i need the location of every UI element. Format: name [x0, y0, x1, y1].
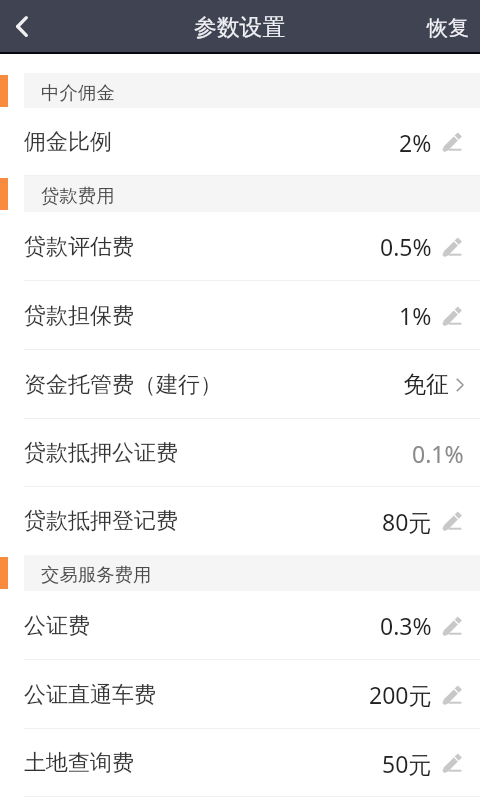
staticText: 0.3% [380, 610, 432, 641]
staticText: 200元 [369, 679, 432, 710]
staticText: 免征 [403, 370, 449, 399]
staticText: 中介佣金 [41, 81, 115, 104]
staticText: 资金托管费（建行） [24, 371, 222, 399]
button[interactable]: 贷款抵押登记费 [0, 487, 480, 555]
staticText: 恢复 [427, 15, 469, 41]
button[interactable]: 贷款评估费 [0, 212, 480, 281]
staticText: 交易服务费用 [41, 563, 152, 586]
button[interactable]: 贷款担保费 [0, 281, 480, 350]
button[interactable]: Back [0, 0, 44, 52]
button[interactable]: 佣金比例 [0, 108, 480, 176]
staticText: 1% [399, 300, 432, 331]
button[interactable]: 贷款抵押公证费 [0, 419, 480, 487]
staticText: 0.1% [412, 438, 464, 469]
button[interactable]: 恢复 [416, 0, 480, 52]
staticText: 0.5% [380, 231, 432, 262]
staticText: 2% [399, 127, 432, 158]
button[interactable]: 土地查询费 [0, 729, 480, 797]
staticText: 80元 [382, 506, 432, 537]
staticText: 公证费 [24, 612, 90, 640]
staticText: 贷款担保费 [24, 302, 134, 330]
staticText: 贷款费用 [41, 184, 115, 207]
button[interactable]: 资金托管费（建行） [0, 350, 480, 419]
staticText: 50元 [382, 748, 432, 779]
staticText: 贷款评估费 [24, 233, 134, 261]
staticText: 贷款抵押登记费 [24, 507, 178, 535]
button[interactable]: 公证直通车费 [0, 660, 480, 729]
staticText: 佣金比例 [24, 128, 112, 156]
staticText: 公证直通车费 [24, 681, 156, 709]
staticText: 参数设置 [194, 13, 286, 42]
button[interactable]: 公证费 [0, 591, 480, 660]
staticText: 土地查询费 [24, 749, 134, 777]
staticText: 贷款抵押公证费 [24, 439, 178, 467]
